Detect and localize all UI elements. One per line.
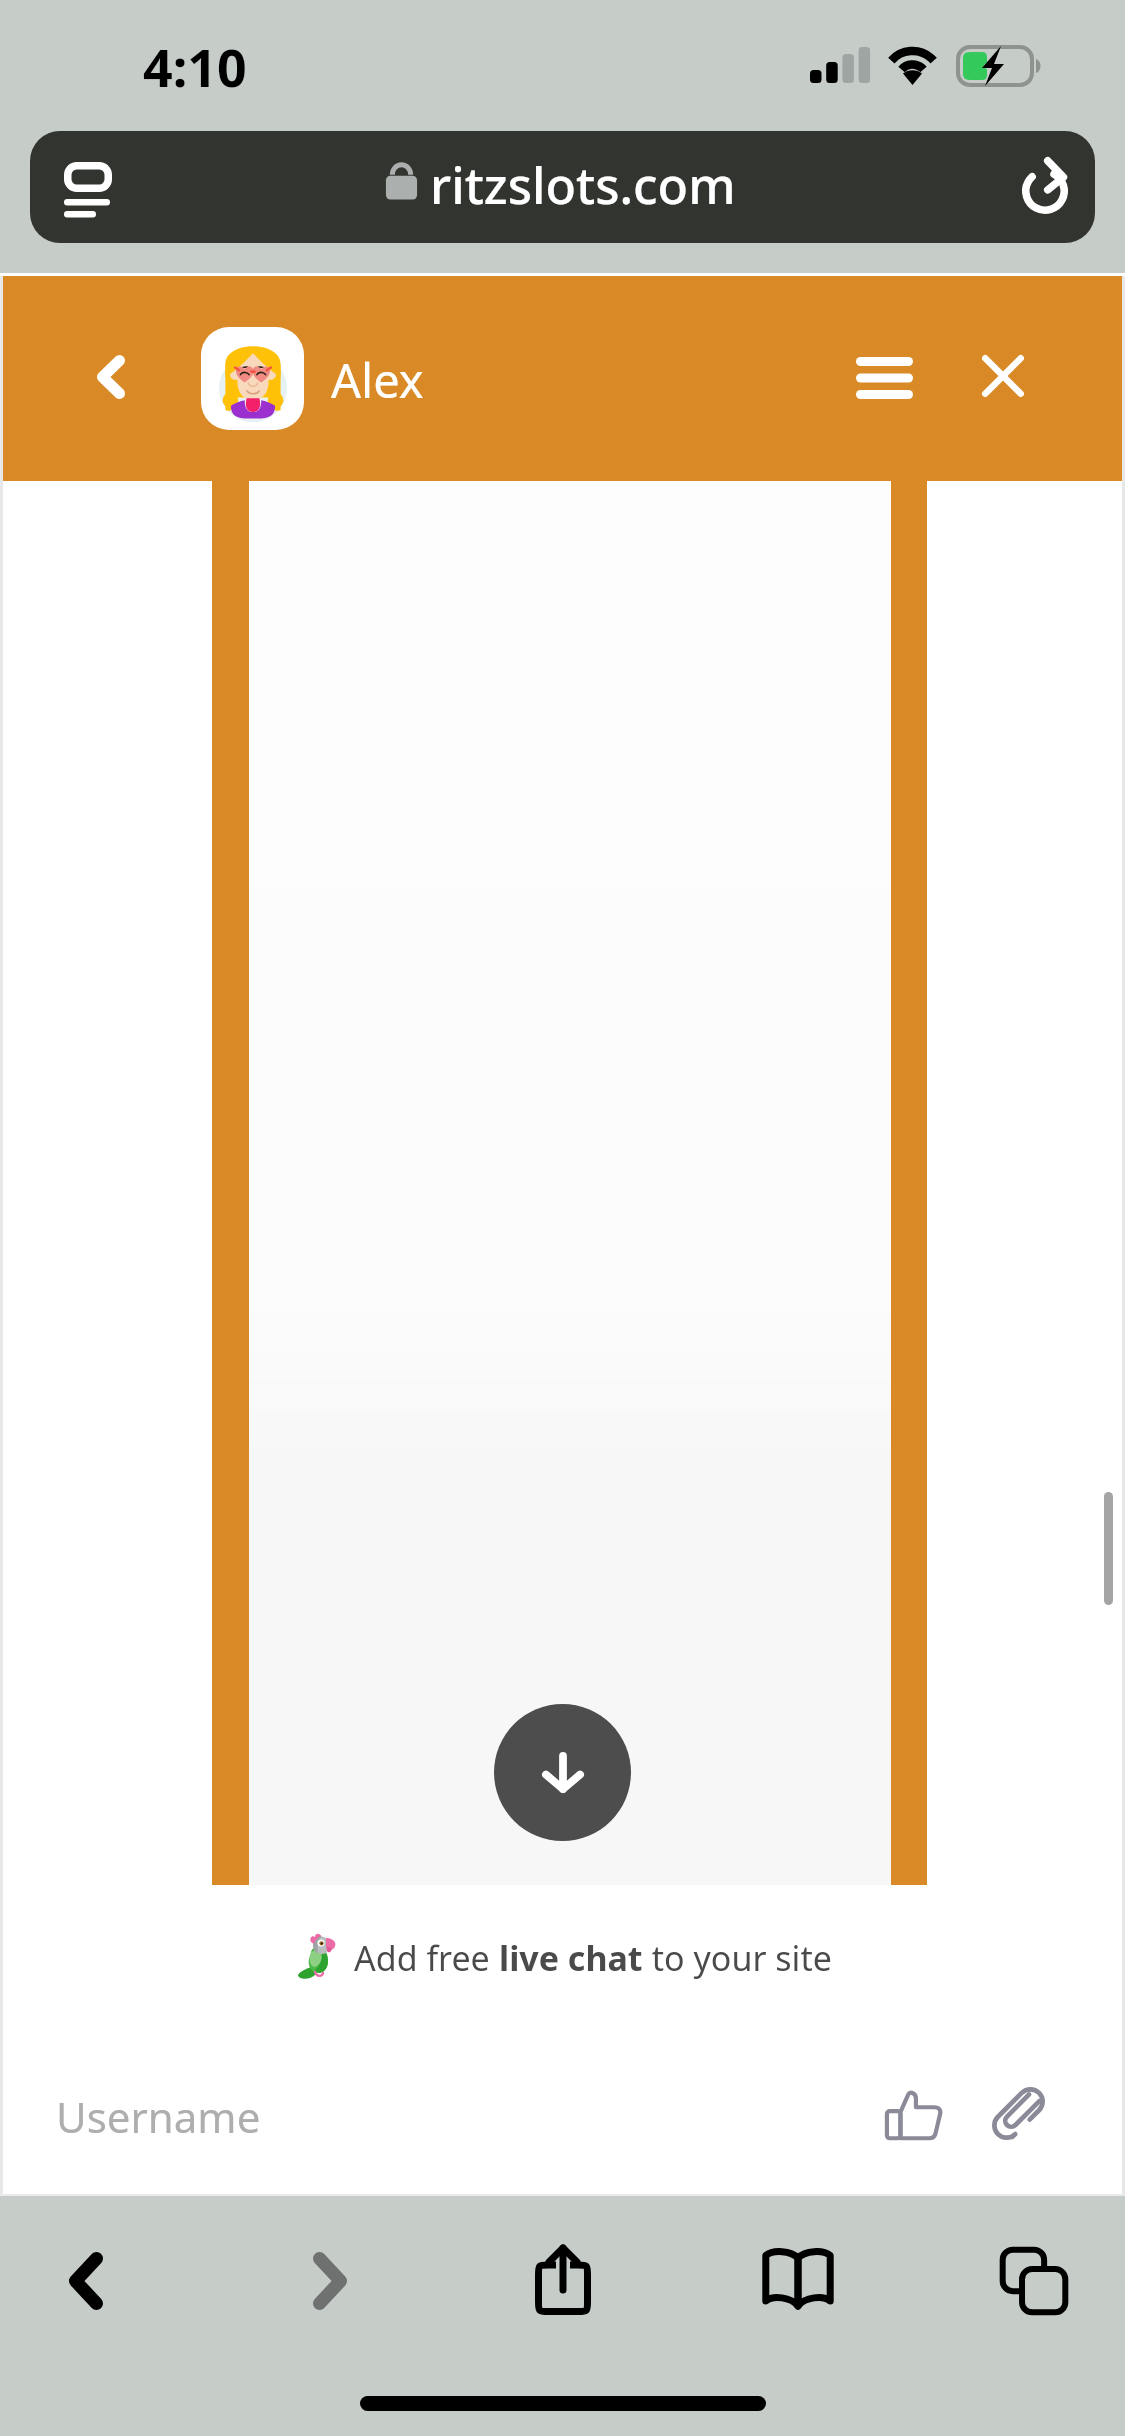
other: Page settings xyxy=(64,162,112,218)
button[interactable]: Menu xyxy=(829,308,939,448)
button[interactable]: Back xyxy=(63,299,158,454)
button[interactable]: Bookmarks xyxy=(738,2216,858,2344)
staticText: to your site xyxy=(643,1935,832,1981)
button[interactable]: Tabs xyxy=(974,2217,1094,2345)
staticText: ritzslots.com xyxy=(430,151,736,219)
staticText: 4:10 xyxy=(143,31,247,102)
other: Reload xyxy=(1022,157,1068,214)
staticText: Username xyxy=(56,2088,261,2145)
button[interactable]: Page settings xyxy=(30,131,1095,243)
button[interactable]: Forward xyxy=(270,2217,390,2345)
staticText: Alex xyxy=(331,348,424,412)
button[interactable]: Back xyxy=(26,2217,146,2345)
button[interactable]: Add free xyxy=(297,1927,832,1989)
button[interactable]: Like xyxy=(855,2056,970,2171)
staticText: live chat xyxy=(499,1935,643,1981)
staticText: Add free xyxy=(354,1935,499,1981)
button[interactable]: Scroll to bottom xyxy=(494,1704,631,1841)
button[interactable]: Attach file xyxy=(962,2057,1077,2172)
button[interactable]: Close xyxy=(948,306,1058,446)
button[interactable]: Share xyxy=(503,2215,623,2343)
